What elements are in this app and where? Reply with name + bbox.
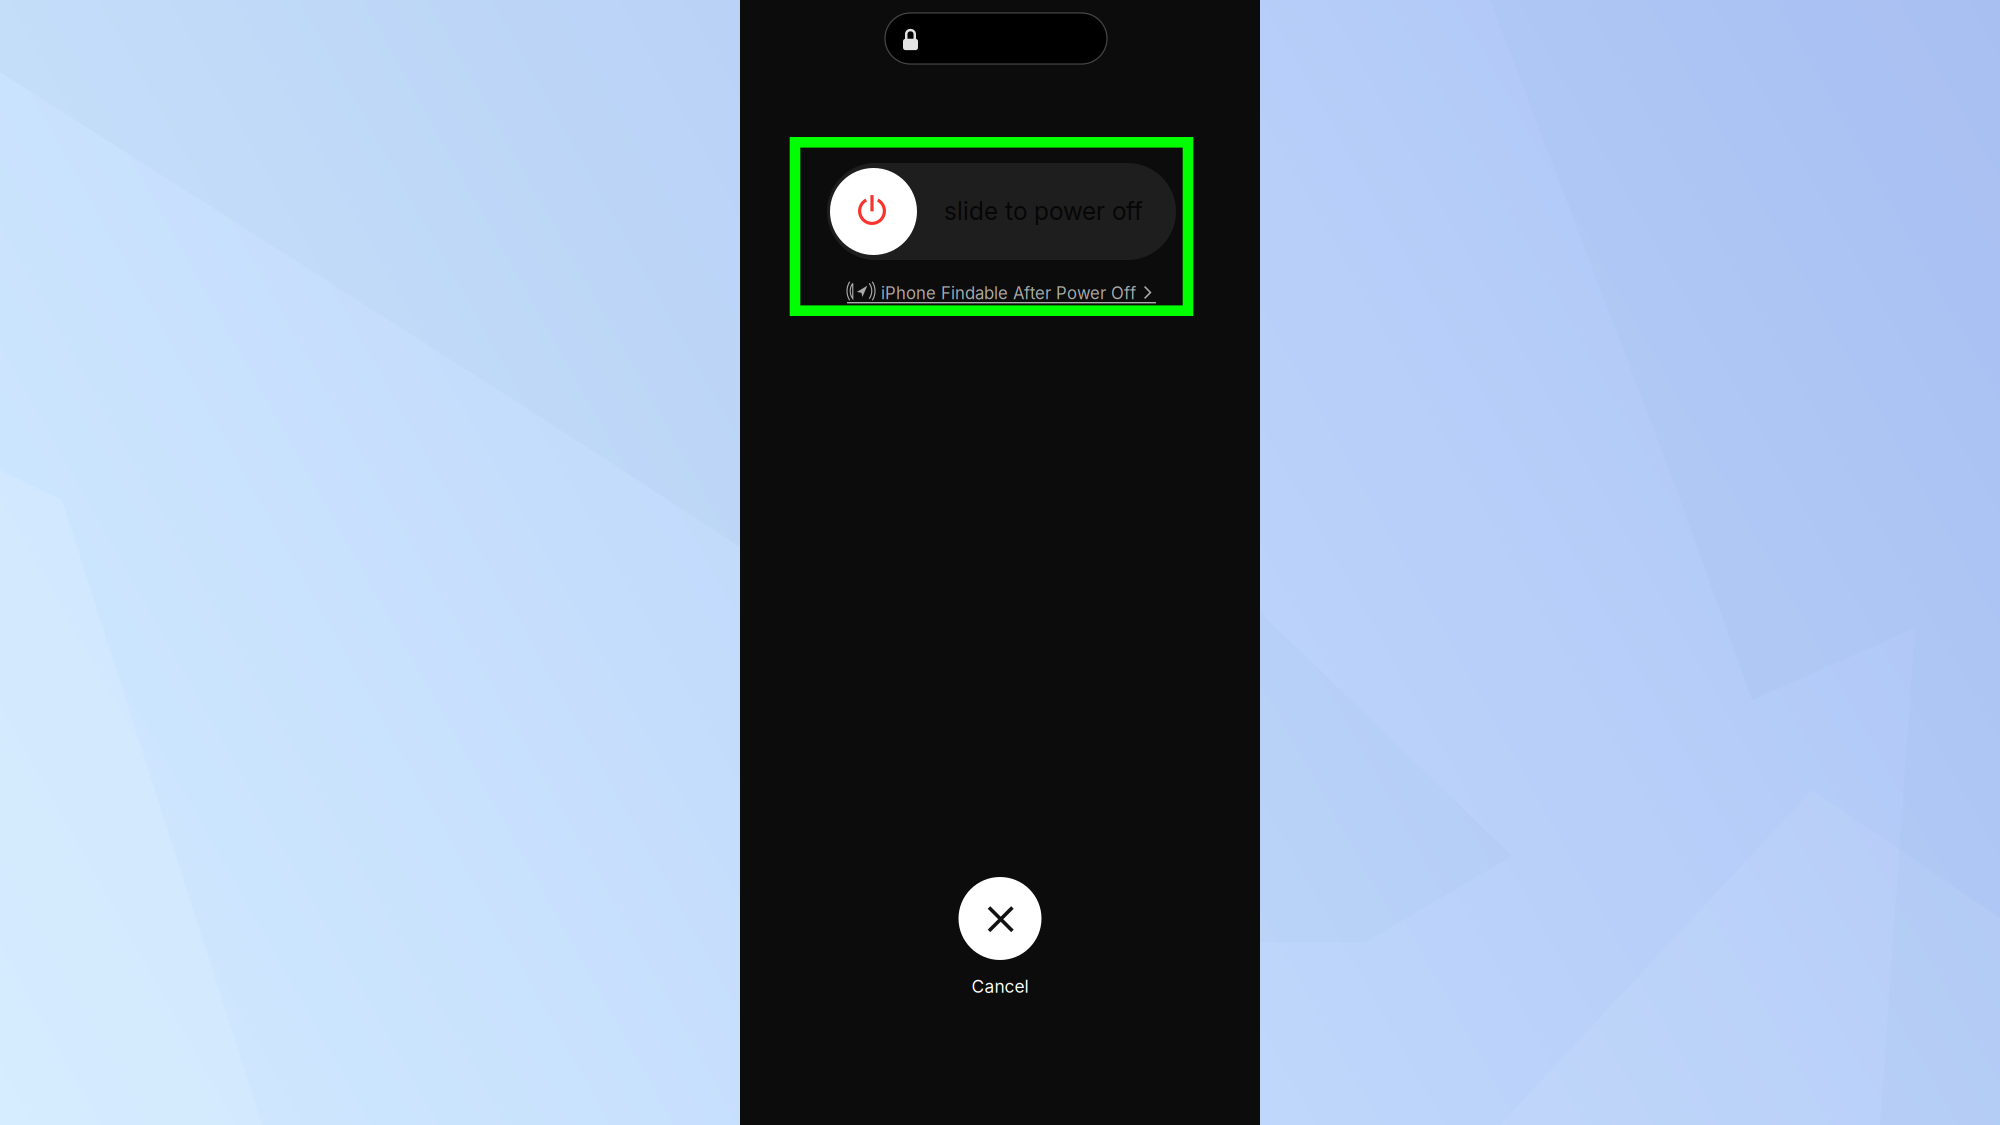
button[interactable]: slide to power off [827,163,1176,260]
button[interactable]: iPhone Findable After Power Off [847,280,1156,304]
staticText: iPhone Findable After Power Off [881,283,1136,303]
staticText: Cancel [971,976,1028,997]
staticText: slide to power off [944,196,1143,226]
button[interactable]: Cancel [930,877,1070,997]
